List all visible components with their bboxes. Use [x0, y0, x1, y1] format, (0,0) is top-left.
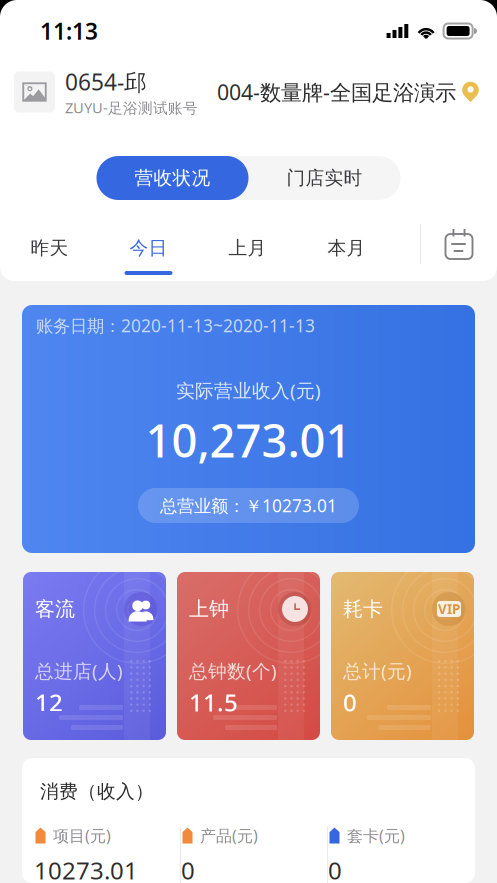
staticText: 11.5	[189, 686, 238, 718]
staticText: 10,273.01	[145, 410, 351, 470]
staticText: 上月	[228, 236, 266, 259]
staticText: VIP	[438, 600, 460, 618]
staticText: 门店实时	[286, 166, 362, 189]
staticText: 总计(元)	[343, 658, 412, 683]
staticText: 总进店(人)	[35, 658, 123, 683]
button[interactable]: 上月	[198, 215, 297, 281]
button[interactable]: 今日	[99, 215, 198, 281]
staticText: 昨天	[30, 236, 68, 259]
staticText: 总营业额：￥10273.01	[160, 494, 337, 517]
staticText: 实际营业收入(元)	[176, 378, 321, 403]
staticText: 今日	[129, 236, 167, 259]
staticText: ZUYU-足浴测试账号	[65, 98, 198, 117]
staticText: 本月	[327, 236, 365, 259]
staticText: 产品(元)	[200, 825, 258, 846]
staticText: 0	[328, 854, 342, 883]
staticText: 10273.01	[34, 854, 138, 883]
staticText: 消费（收入）	[40, 780, 154, 803]
staticText: 客流	[35, 597, 75, 621]
staticText: 0	[181, 854, 195, 883]
staticText: 上钟	[189, 597, 229, 621]
button[interactable]: 营收状况	[96, 156, 248, 200]
staticText: 营收状况	[134, 166, 210, 189]
staticText: 0654-邱	[65, 67, 147, 97]
staticText: 004-数量牌-全国足浴演示	[217, 78, 456, 106]
staticText: 0	[343, 686, 357, 718]
staticText: 11:13	[40, 16, 98, 46]
staticText: 耗卡	[343, 597, 383, 621]
button[interactable]: 本月	[297, 215, 396, 281]
button[interactable]: Select date range	[421, 215, 497, 281]
staticText: 项目(元)	[53, 825, 111, 846]
button[interactable]: 004-数量牌-全国足浴演示	[217, 78, 479, 106]
staticText: 套卡(元)	[347, 825, 405, 846]
button[interactable]: 门店实时	[248, 156, 400, 200]
staticText: 总钟数(个)	[189, 658, 277, 683]
button[interactable]: 昨天	[0, 215, 99, 281]
staticText: 12	[35, 686, 63, 718]
staticText: 账务日期：2020-11-13~2020-11-13	[36, 314, 315, 337]
button[interactable]: 0654-邱	[14, 67, 198, 117]
